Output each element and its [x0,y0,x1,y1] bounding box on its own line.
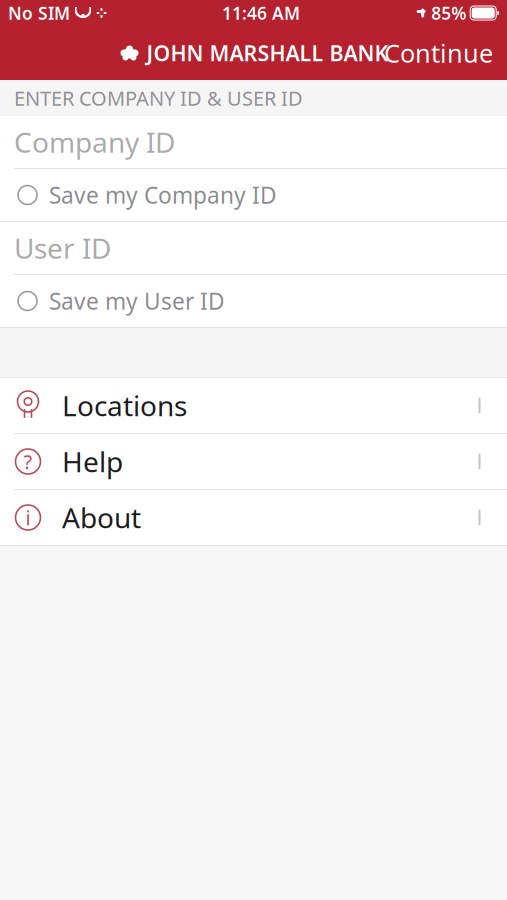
staticText: ENTER COMPANY ID & USER ID [14,85,303,111]
button[interactable]: ? [0,434,507,489]
staticText: User ID [14,229,111,267]
button[interactable]: Save my User ID [0,275,507,327]
staticText: 85% [431,1,466,24]
staticText: Locations [62,387,187,424]
button[interactable]: Locations [0,378,507,433]
button[interactable]: Save my Company ID [0,169,507,221]
staticText: Continue [384,36,493,70]
button[interactable]: Continue [370,31,507,75]
button[interactable]: User ID [0,222,507,274]
staticText: Company ID [14,123,175,161]
staticText: i [25,504,30,531]
staticText: No SIM [8,1,70,24]
staticText: Save my Company ID [49,180,277,210]
staticText: 11:46 AM [222,1,300,24]
staticText: Help [62,443,123,480]
button[interactable]: i [0,490,507,545]
button[interactable]: Company ID [0,116,507,168]
staticText: ? [23,448,32,475]
staticText: JOHN MARSHALL BANK [146,39,388,67]
staticText: Save my User ID [49,286,225,316]
staticText: About [62,499,141,536]
